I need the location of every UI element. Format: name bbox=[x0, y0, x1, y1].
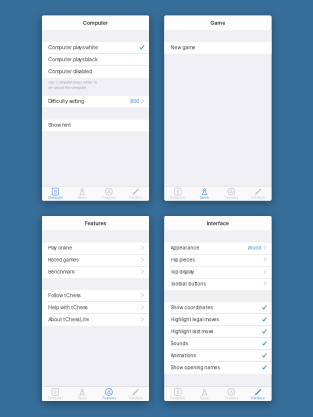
button[interactable]: Computer bbox=[164, 186, 191, 201]
button[interactable]: Features bbox=[218, 186, 245, 201]
staticText: Game bbox=[78, 196, 87, 199]
button[interactable]: Game bbox=[191, 186, 218, 201]
button[interactable]: Interface bbox=[245, 387, 271, 401]
staticText: Tap “Computer plays white” to bbox=[48, 80, 97, 84]
button[interactable]: Computer disabled bbox=[42, 66, 149, 78]
staticText: Interface bbox=[251, 196, 265, 199]
button[interactable]: Interface bbox=[122, 186, 149, 201]
button[interactable]: Interface bbox=[245, 186, 271, 201]
staticText: Wood bbox=[248, 245, 262, 251]
button[interactable]: Top display bbox=[164, 266, 271, 278]
button[interactable]: Computer plays white bbox=[42, 42, 149, 54]
staticText: Computer bbox=[170, 196, 185, 199]
button[interactable]: Highlight last move bbox=[164, 326, 271, 338]
button[interactable]: Computer plays black bbox=[42, 54, 149, 66]
staticText: Interface bbox=[251, 396, 265, 400]
button[interactable]: Computer bbox=[42, 186, 69, 201]
button[interactable]: Computer bbox=[164, 387, 191, 401]
staticText: Computer plays black bbox=[48, 56, 98, 62]
staticText: Game bbox=[78, 396, 87, 400]
staticText: Top display bbox=[171, 269, 195, 275]
button[interactable]: Follow tChess bbox=[42, 290, 149, 302]
button[interactable]: Features bbox=[218, 387, 245, 401]
staticText: Game bbox=[200, 196, 209, 199]
button[interactable]: Play online bbox=[42, 242, 149, 254]
button[interactable]: Highlight legal moves bbox=[164, 314, 271, 326]
button[interactable]: Game bbox=[69, 186, 96, 201]
staticText: Animations bbox=[171, 352, 196, 358]
button[interactable]: New game bbox=[164, 42, 271, 54]
staticText: Computer plays white bbox=[48, 44, 98, 50]
button[interactable]: Sounds bbox=[164, 338, 271, 350]
staticText: un-pause the computer. bbox=[48, 85, 87, 89]
button[interactable]: Difficulty setting bbox=[42, 96, 149, 107]
staticText: Features bbox=[225, 396, 238, 400]
staticText: Help with tChess bbox=[48, 304, 87, 310]
button[interactable]: Toolbar buttons bbox=[164, 278, 271, 290]
staticText: Rated games bbox=[48, 257, 78, 263]
staticText: About tChess Lite bbox=[48, 316, 89, 322]
staticText: Features bbox=[102, 396, 115, 400]
staticText: Features bbox=[225, 196, 238, 199]
button[interactable]: Interface bbox=[122, 387, 149, 401]
staticText: Highlight legal moves bbox=[171, 316, 219, 322]
button[interactable]: Animations bbox=[164, 350, 271, 362]
button[interactable]: Game bbox=[69, 387, 96, 401]
button[interactable]: Features bbox=[95, 387, 122, 401]
staticText: Computer bbox=[48, 396, 63, 400]
staticText: Play online bbox=[48, 245, 72, 251]
staticText: Difficulty setting bbox=[48, 98, 84, 104]
button[interactable]: Show opening names bbox=[164, 362, 271, 374]
staticText: Features bbox=[102, 196, 115, 199]
staticText: Follow tChess bbox=[48, 292, 80, 298]
staticText: 800 bbox=[130, 98, 139, 104]
staticText: Computer bbox=[170, 396, 185, 400]
staticText: Highlight last move bbox=[171, 328, 214, 334]
staticText: Features bbox=[84, 220, 106, 226]
staticText: Interface bbox=[129, 396, 143, 400]
staticText: Toolbar buttons bbox=[171, 281, 206, 287]
staticText: Sounds bbox=[171, 340, 188, 346]
button[interactable]: Flip pieces bbox=[164, 254, 271, 266]
button[interactable]: Help with tChess bbox=[42, 302, 149, 314]
staticText: Show coordinates bbox=[171, 304, 213, 310]
button[interactable]: About tChess Lite bbox=[42, 314, 149, 326]
button[interactable]: Computer bbox=[42, 387, 69, 401]
button[interactable]: Game bbox=[191, 387, 218, 401]
button[interactable]: Show coordinates bbox=[164, 302, 271, 314]
staticText: Interface bbox=[207, 220, 229, 226]
staticText: Show hint bbox=[48, 122, 71, 128]
staticText: New game bbox=[171, 44, 196, 50]
staticText: Computer bbox=[83, 20, 108, 26]
button[interactable]: Benchmark bbox=[42, 266, 149, 278]
staticText: Benchmark bbox=[48, 269, 75, 275]
button[interactable]: Rated games bbox=[42, 254, 149, 266]
staticText: Flip pieces bbox=[171, 257, 195, 263]
staticText: Show opening names bbox=[171, 364, 220, 370]
button[interactable]: Appearance bbox=[164, 242, 271, 254]
staticText: Game bbox=[200, 396, 209, 400]
button[interactable]: Features bbox=[95, 186, 122, 201]
staticText: Game bbox=[210, 20, 225, 26]
button[interactable]: Show hint bbox=[42, 120, 149, 131]
staticText: Computer disabled bbox=[48, 68, 92, 74]
staticText: Appearance bbox=[171, 245, 200, 251]
staticText: Computer bbox=[48, 196, 63, 199]
staticText: Interface bbox=[129, 196, 143, 199]
